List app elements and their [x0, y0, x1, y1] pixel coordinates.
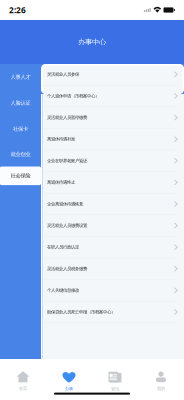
- button[interactable]: 灵活就业人员缴费设置: [41, 215, 184, 237]
- button[interactable]: 就业创业: [0, 142, 41, 166]
- staticText: 灵活就业人员税务缴费: [47, 266, 87, 271]
- button[interactable]: 企业离退休待遇恢复: [41, 194, 184, 215]
- button[interactable]: 首页: [0, 359, 46, 393]
- staticText: 办事中心: [78, 37, 106, 47]
- staticText: 资讯: [111, 386, 119, 392]
- staticText: 灵活就业人员缴费设置: [47, 223, 87, 228]
- staticText: 办事: [65, 386, 73, 392]
- button[interactable]: 助保贷款人员死亡申报（市档案中心）: [41, 302, 184, 323]
- button[interactable]: 我的: [138, 359, 184, 393]
- staticText: 离退休待遇终止: [47, 180, 75, 185]
- staticText: 社会保险: [10, 172, 30, 179]
- button[interactable]: 企业在职养老账户返还: [41, 150, 184, 172]
- button[interactable]: 离退休待遇终止: [41, 172, 184, 194]
- button[interactable]: 灵活就业人员暂停缴费: [41, 107, 184, 129]
- staticText: 就业创业: [10, 151, 30, 158]
- staticText: 社保卡: [13, 126, 28, 132]
- button[interactable]: 灵活就业人员参保: [41, 64, 184, 86]
- button[interactable]: 办事: [46, 359, 92, 393]
- staticText: 2:26: [9, 4, 26, 16]
- button[interactable]: 社会保险: [0, 166, 41, 185]
- staticText: 首页: [19, 386, 27, 391]
- button[interactable]: 个人退休申请（市档案中心）: [41, 86, 184, 107]
- button[interactable]: 在职人员行政认定: [41, 237, 184, 258]
- staticText: 助保贷款人员死亡申报（市档案中心）: [47, 309, 115, 315]
- button[interactable]: 人脸认证: [0, 90, 41, 116]
- staticText: 灵活就业人员暂停缴费: [47, 115, 87, 120]
- button[interactable]: 资讯: [92, 359, 138, 393]
- button[interactable]: 社保卡: [0, 116, 41, 142]
- staticText: 人脸认证: [10, 100, 30, 106]
- staticText: 灵活就业人员参保: [47, 72, 79, 77]
- staticText: 离退休待遇补发: [47, 136, 75, 142]
- staticText: 企业在职养老账户返还: [47, 158, 87, 163]
- staticText: 个人退休申请（市档案中心）: [47, 93, 99, 99]
- staticText: 在职人员行政认定: [47, 244, 79, 250]
- staticText: 个人关键信息修改: [47, 288, 79, 293]
- staticText: 我的: [157, 386, 165, 391]
- button[interactable]: 个人关键信息修改: [41, 280, 184, 302]
- button[interactable]: 灵活就业人员税务缴费: [41, 258, 184, 280]
- button[interactable]: 人事人才: [0, 64, 41, 90]
- staticText: 企业离退休待遇恢复: [47, 201, 83, 207]
- staticText: 人事人才: [10, 74, 30, 80]
- button[interactable]: 离退休待遇补发: [41, 129, 184, 150]
